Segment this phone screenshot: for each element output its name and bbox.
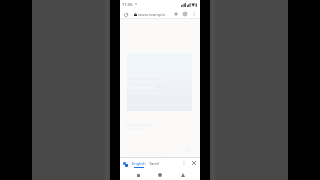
button[interactable] [132,10,171,18]
staticText: 11:06 [122,2,133,8]
button[interactable]: Reload page [122,11,129,18]
button[interactable]: Back [178,170,188,180]
staticText: English [132,161,146,166]
button[interactable]: Home [155,170,165,180]
button[interactable]: English [131,157,146,170]
staticText: www.example.com/articl [138,12,167,18]
button[interactable]: Google Translate [121,160,129,168]
button[interactable]: Translate options [180,159,188,167]
button[interactable]: Close [190,159,198,167]
button[interactable]: More options [190,10,198,18]
button[interactable]: Tamil [148,157,160,170]
button[interactable]: New tab [172,10,180,18]
staticText: Tamil [149,161,159,166]
button[interactable]: Switch tabs [181,10,189,18]
button[interactable]: Recent apps [133,170,143,180]
